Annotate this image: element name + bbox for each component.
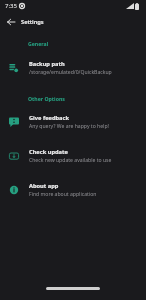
staticText: About app — [29, 182, 59, 190]
staticText: Backup path — [29, 60, 65, 68]
staticText: Give feedback — [29, 114, 69, 122]
staticText: 7:35 — [5, 2, 17, 10]
button[interactable]: Back — [3, 14, 18, 29]
staticText: Other Options — [28, 95, 65, 102]
staticText: Check update — [29, 148, 68, 156]
staticText: Check new update available to use — [29, 157, 112, 164]
staticText: General — [28, 40, 49, 47]
button[interactable]: Backup path — [0, 51, 146, 85]
button[interactable]: About app — [0, 173, 146, 207]
staticText: Find more about application — [29, 191, 97, 198]
button[interactable]: Check update — [0, 139, 146, 173]
staticText: /storage/emulated/0/QuickBackup — [29, 69, 112, 76]
button[interactable]: Give feedback — [0, 105, 146, 139]
staticText: Settings — [21, 18, 44, 26]
staticText: Any query? We are happy to help! — [29, 123, 109, 130]
